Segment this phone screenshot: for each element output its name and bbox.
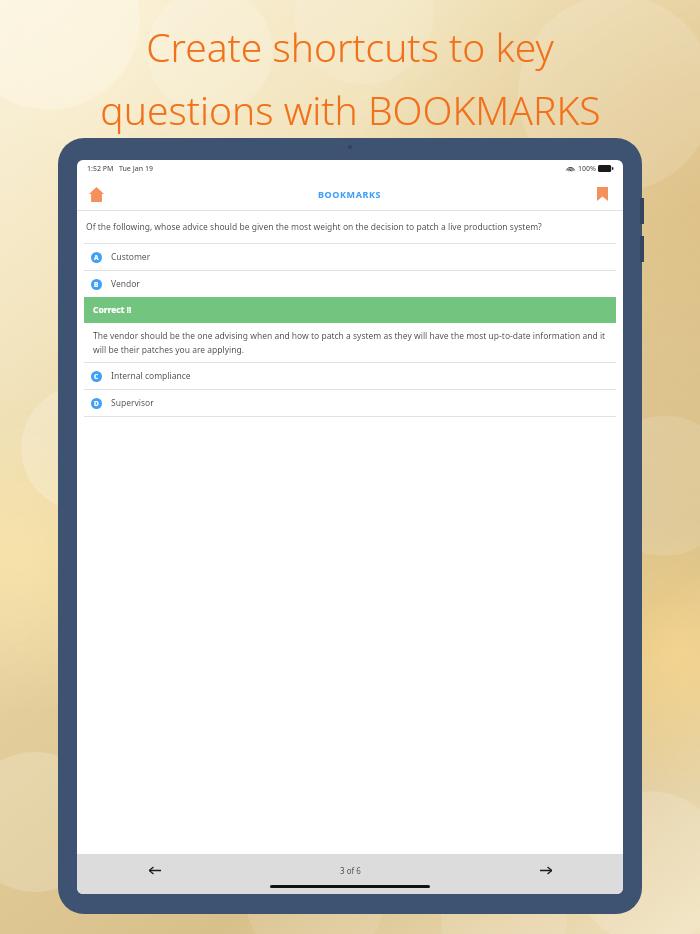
staticText: C: [94, 372, 99, 381]
staticText: Vendor: [111, 278, 140, 290]
button[interactable]: Bookmark: [589, 181, 615, 207]
staticText: Internal compliance: [111, 370, 191, 382]
staticText: A: [94, 253, 99, 262]
button[interactable]: Correct !!: [84, 297, 616, 323]
staticText: Customer: [111, 251, 151, 263]
staticText: B: [94, 280, 99, 289]
staticText: questions with BOOKMARKS: [100, 83, 601, 136]
button[interactable]: D: [84, 390, 616, 416]
button[interactable]: C: [84, 363, 616, 389]
staticText: BOOKMARKS: [318, 188, 382, 200]
staticText: Of the following, whose advice should be…: [86, 221, 542, 233]
staticText: Correct !!: [93, 304, 132, 316]
staticText: Supervisor: [111, 397, 154, 409]
button[interactable]: Next: [531, 855, 561, 885]
staticText: 100%: [578, 164, 596, 174]
button[interactable]: Previous: [139, 855, 169, 885]
staticText: 1:52 PM Tue Jan 19: [87, 164, 153, 174]
staticText: 3 of 6: [340, 865, 361, 876]
staticText: The vendor should be the one advising wh…: [93, 330, 607, 355]
button[interactable]: B: [84, 271, 616, 297]
staticText: D: [94, 399, 99, 408]
staticText: Create shortcuts to key: [146, 20, 554, 73]
button[interactable]: Home: [83, 181, 109, 207]
button[interactable]: A: [84, 244, 616, 270]
